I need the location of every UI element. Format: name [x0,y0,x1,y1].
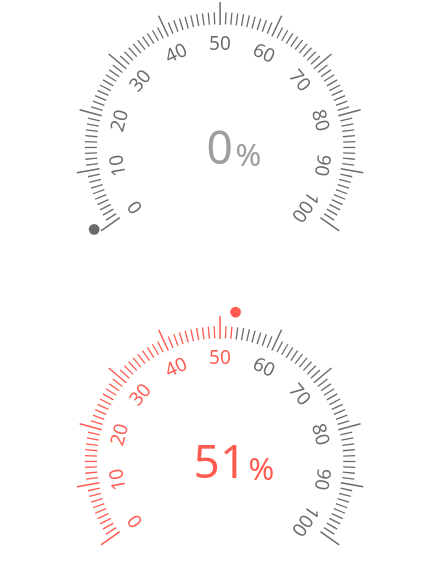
button[interactable]: Circular scale slider, 51 percent [0,290,432,581]
button[interactable]: Circular scale slider, 0 percent [0,0,432,290]
